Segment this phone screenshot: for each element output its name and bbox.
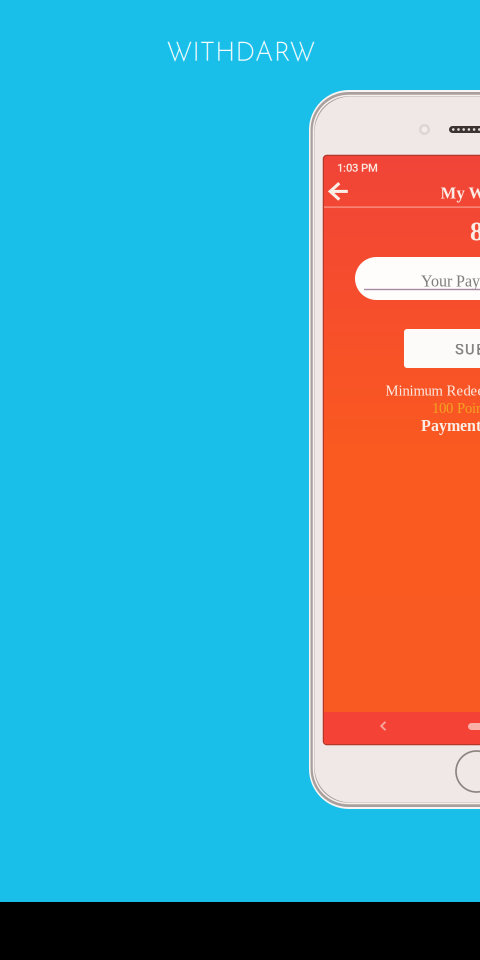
- staticText: WITHDARW: [166, 41, 315, 67]
- button[interactable]: Back: [328, 183, 349, 201]
- staticText: 100 Points: [432, 400, 480, 416]
- staticText: SUBMIT: [455, 341, 480, 358]
- button[interactable]: Home: [468, 723, 480, 730]
- staticText: Payment in 24 Hour: [421, 417, 480, 434]
- staticText: 850: [470, 217, 480, 246]
- staticText: 1:03 PM: [337, 161, 378, 175]
- staticText: Minimum Redeemable: [385, 382, 480, 399]
- staticText: My Wallet: [440, 184, 480, 202]
- staticText: Your Paytm Number: [421, 272, 480, 290]
- button[interactable]: SUBMIT: [404, 329, 480, 368]
- button[interactable]: Back: [380, 721, 387, 731]
